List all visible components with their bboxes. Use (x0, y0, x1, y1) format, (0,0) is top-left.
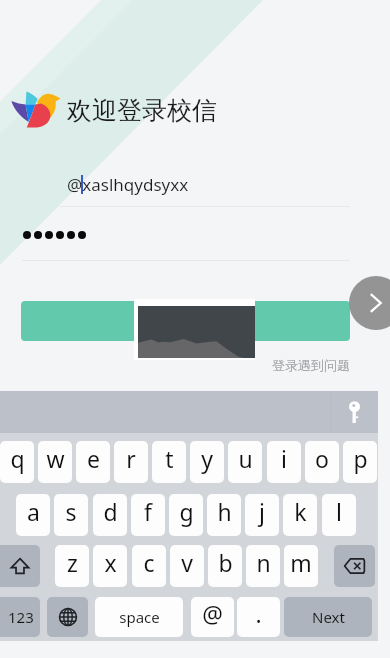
button[interactable]: f (131, 494, 165, 536)
staticText: k (294, 496, 307, 527)
staticText: o (315, 443, 329, 474)
button[interactable]: Password (331, 391, 378, 433)
staticText: h (217, 496, 232, 527)
staticText: 123 (8, 607, 34, 627)
button[interactable]: n (246, 545, 280, 587)
staticText: c (143, 547, 155, 578)
button[interactable]: t (152, 441, 186, 483)
button[interactable]: g (169, 494, 203, 536)
staticText: z (67, 547, 78, 578)
button[interactable]: b (208, 545, 242, 587)
button[interactable]: q (0, 441, 34, 483)
staticText: g (179, 496, 194, 527)
button[interactable]: x (93, 545, 127, 587)
staticText: d (103, 496, 118, 527)
staticText: f (144, 496, 152, 527)
button[interactable]: e (76, 441, 110, 483)
button[interactable]: s (54, 494, 88, 536)
staticText: i (281, 443, 287, 474)
button[interactable]: Language (47, 597, 88, 637)
staticText: v (181, 547, 193, 578)
button[interactable]: Next (284, 597, 372, 637)
button[interactable]: z (55, 545, 89, 587)
staticText: e (87, 443, 100, 474)
button[interactable]: u (228, 441, 262, 483)
staticText: y (201, 443, 213, 474)
button[interactable]: i (267, 441, 301, 483)
staticText: u (238, 443, 253, 474)
button[interactable]: Next (349, 276, 390, 330)
button[interactable]: p (343, 441, 377, 483)
staticText: n (256, 547, 271, 578)
button[interactable]: Shift (0, 545, 40, 587)
button[interactable]: y (190, 441, 224, 483)
staticText: q (10, 443, 25, 474)
staticText: p (353, 443, 368, 474)
button[interactable]: j (245, 494, 279, 536)
button[interactable]: k (283, 494, 317, 536)
staticText: m (290, 547, 312, 578)
button[interactable]: v (170, 545, 204, 587)
staticText: b (218, 547, 233, 578)
staticText: r (126, 443, 136, 474)
button[interactable]: l (322, 494, 356, 536)
button[interactable]: 123 (0, 597, 40, 637)
staticText: j (259, 496, 265, 527)
button[interactable]: 登录遇到问题 (272, 357, 350, 373)
button[interactable]: Backspace (334, 545, 375, 587)
button[interactable]: o (305, 441, 339, 483)
button[interactable]: w (38, 441, 72, 483)
button[interactable]: r (114, 441, 148, 483)
staticText: l (336, 496, 342, 527)
button[interactable]: . (237, 597, 280, 637)
button[interactable]: c (132, 545, 166, 587)
button[interactable] (21, 301, 350, 341)
staticText: @ (202, 598, 223, 629)
staticText: x (104, 547, 117, 578)
staticText: s (65, 496, 77, 527)
button[interactable]: a (16, 494, 50, 536)
staticText: space (119, 607, 160, 627)
staticText: w (46, 443, 65, 474)
staticText: t (165, 443, 174, 474)
button[interactable]: space (95, 597, 183, 637)
button[interactable]: d (93, 494, 127, 536)
button[interactable]: h (207, 494, 241, 536)
staticText: @xaslhqydsyxx (67, 173, 189, 196)
staticText: . (255, 598, 262, 629)
button[interactable]: m (284, 545, 318, 587)
button[interactable]: @ (191, 597, 234, 637)
staticText: 欢迎登录校信 (67, 95, 217, 126)
staticText: Next (312, 607, 345, 627)
staticText: a (27, 496, 40, 527)
